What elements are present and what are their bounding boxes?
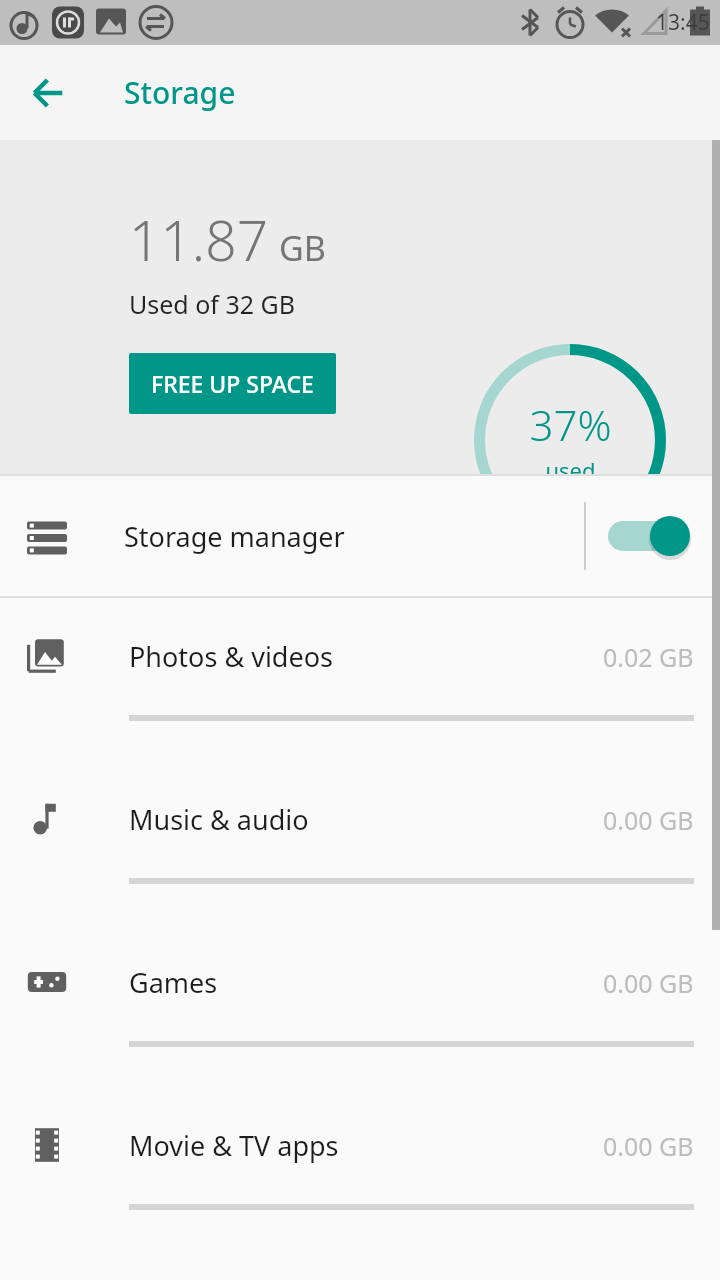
- staticText: 37%: [529, 396, 612, 453]
- button[interactable]: Games: [0, 924, 720, 1087]
- staticText: Music & audio: [129, 801, 309, 838]
- button[interactable]: Music & audio: [0, 761, 720, 924]
- staticText: 0.02 GB: [603, 640, 694, 674]
- staticText: Used of 32 GB: [129, 287, 296, 321]
- staticText: used: [545, 455, 596, 485]
- staticText: FREE UP SPACE: [151, 368, 314, 399]
- button[interactable]: FREE UP SPACE: [129, 353, 336, 414]
- staticText: 0.00 GB: [603, 966, 694, 1000]
- staticText: Movie & TV apps: [129, 1127, 339, 1164]
- button[interactable]: Photos & videos: [0, 598, 720, 761]
- staticText: 0.00 GB: [603, 803, 694, 837]
- button[interactable]: Storage manager toggle: [604, 506, 696, 566]
- staticText: Photos & videos: [129, 638, 333, 675]
- button[interactable]: Back: [20, 65, 76, 121]
- staticText: Storage: [124, 72, 236, 113]
- staticText: Games: [129, 964, 218, 1001]
- staticText: 0.00 GB: [603, 1129, 694, 1163]
- staticText: 11.87: [129, 202, 269, 277]
- staticText: Storage manager: [124, 518, 345, 555]
- button[interactable]: Storage manager: [0, 476, 720, 596]
- staticText: GB: [279, 225, 326, 271]
- button[interactable]: Movie & TV apps: [0, 1087, 720, 1250]
- staticText: 13:45: [656, 8, 710, 37]
